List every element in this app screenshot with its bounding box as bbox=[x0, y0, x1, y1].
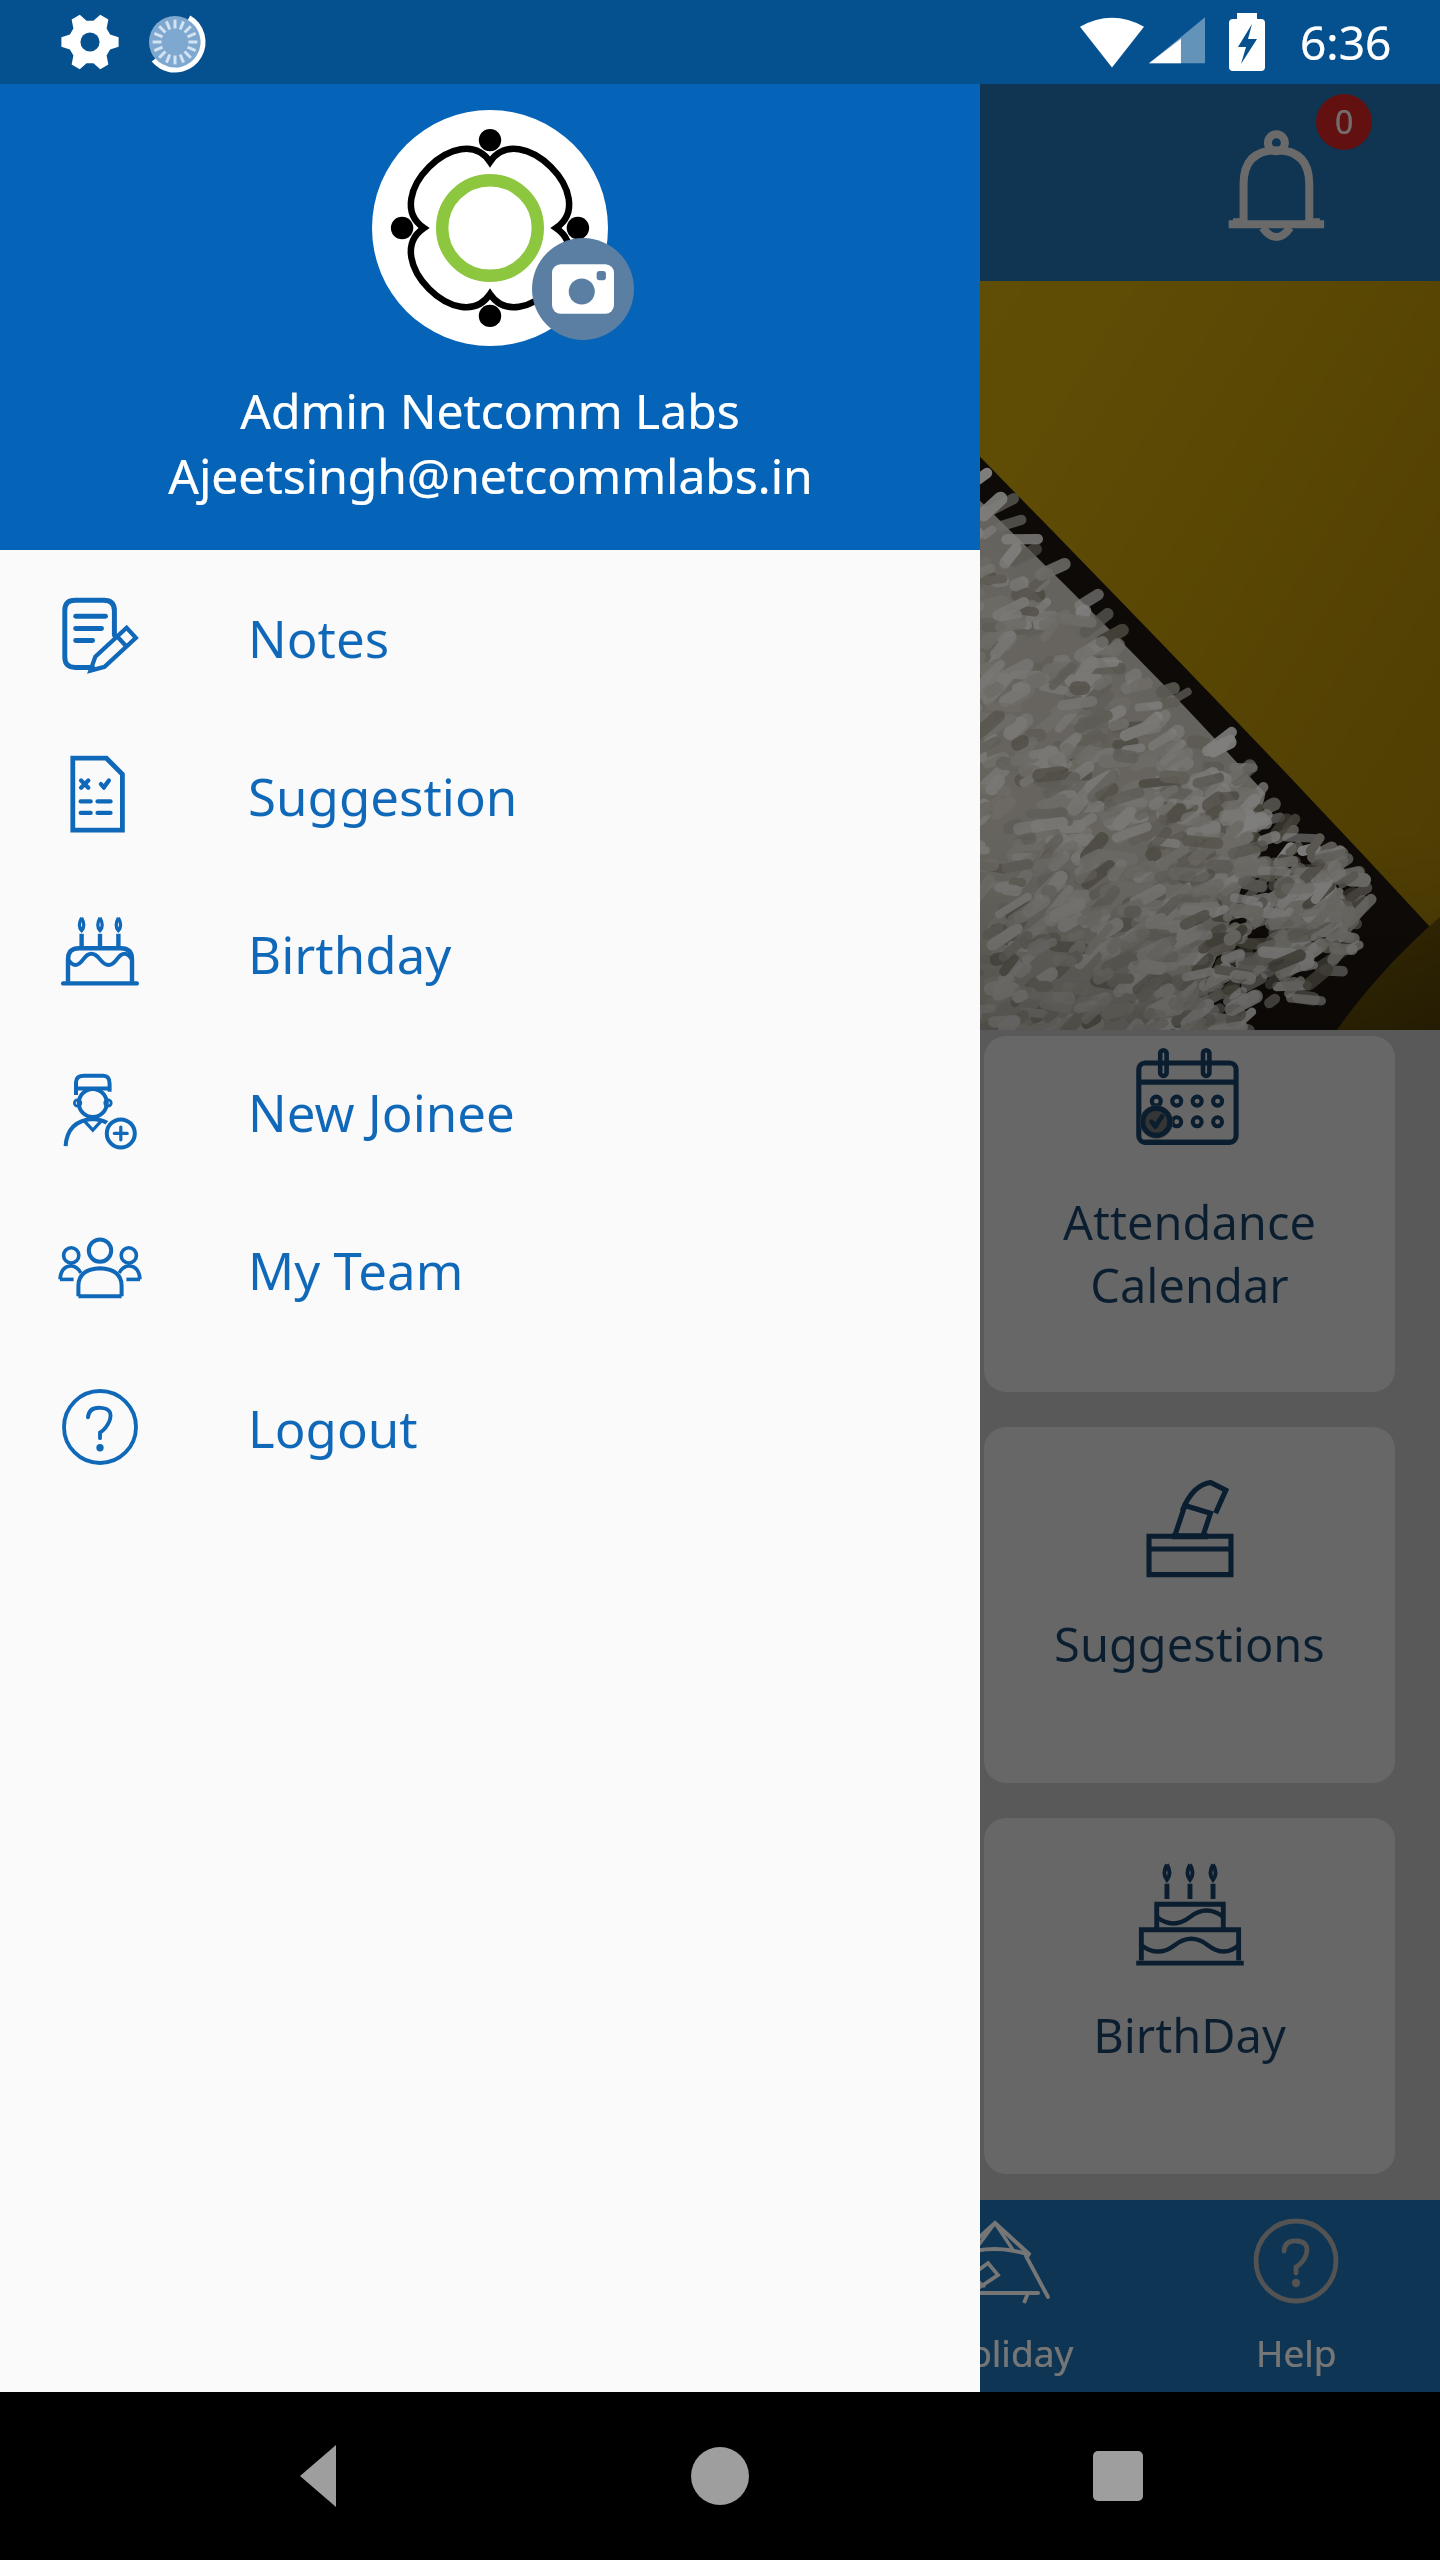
staticText: Notes bbox=[186, 1221, 317, 1285]
button[interactable]: Settings bbox=[48, 0, 132, 84]
button[interactable]: My Team bbox=[0, 1190, 980, 1348]
staticText: Logout bbox=[248, 1393, 418, 1462]
staticText: Ajeetsingh@netcommlabs.in bbox=[168, 443, 813, 508]
staticText: Suggestion bbox=[248, 761, 518, 830]
button[interactable]: New Joinee bbox=[0, 1032, 980, 1190]
button[interactable]: Change profile photo bbox=[532, 238, 634, 340]
button[interactable]: Holiday bbox=[45, 1427, 457, 1783]
button[interactable]: Suggestions bbox=[984, 1427, 1395, 1783]
staticText: Holiday bbox=[942, 2327, 1074, 2377]
button[interactable]: Back bbox=[236, 2392, 404, 2560]
staticText: Admin Netcomm Labs bbox=[240, 378, 740, 443]
button[interactable]: Birthday bbox=[0, 874, 980, 1032]
button[interactable]: Notes bbox=[0, 558, 980, 716]
button[interactable]: Screen brightness bbox=[133, 0, 217, 84]
staticText: BirthDay bbox=[1093, 2003, 1286, 2067]
staticText: My Team bbox=[248, 1235, 464, 1304]
button[interactable]: Recent apps bbox=[1034, 2392, 1202, 2560]
button[interactable]: Notifications bbox=[1202, 90, 1388, 276]
button[interactable]: Suggestion bbox=[0, 716, 980, 874]
button[interactable]: Help bbox=[1152, 2200, 1440, 2392]
staticText: Notes bbox=[248, 603, 390, 672]
staticText: 0 bbox=[1335, 100, 1354, 144]
staticText: 6:36 bbox=[1300, 11, 1392, 74]
button[interactable]: Attendance Calendar bbox=[984, 1036, 1395, 1392]
button[interactable]: Logout bbox=[0, 1348, 980, 1506]
staticText: Birthday bbox=[248, 919, 452, 988]
staticText: New Joinee bbox=[248, 1077, 515, 1146]
button[interactable]: Home bbox=[636, 2392, 804, 2560]
button[interactable]: Notes bbox=[45, 1036, 457, 1392]
staticText: Suggestions bbox=[1054, 1612, 1325, 1676]
button[interactable]: BirthDay bbox=[984, 1818, 1395, 2174]
staticText: Help bbox=[1256, 2327, 1337, 2377]
staticText: Attendance Calendar bbox=[1063, 1190, 1316, 1316]
button[interactable]: Holiday bbox=[864, 2200, 1152, 2392]
